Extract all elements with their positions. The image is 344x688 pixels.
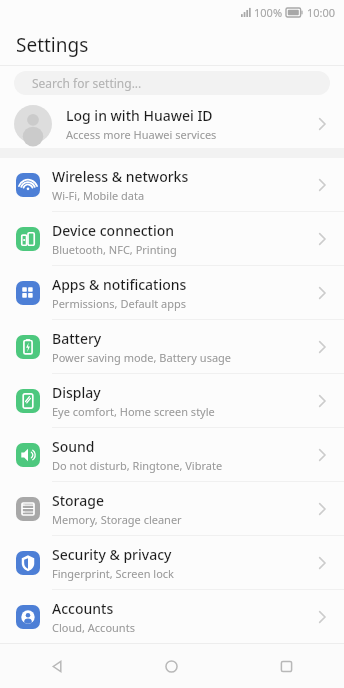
button[interactable]: Security & privacy: [0, 536, 344, 589]
button[interactable]: Apps & notifications: [0, 266, 344, 319]
button[interactable]: Search for setting...: [14, 71, 330, 95]
other: Open: [316, 178, 330, 192]
other: Open: [316, 117, 330, 131]
staticText: Cloud, Accounts: [52, 620, 135, 635]
staticText: Apps & notifications: [52, 275, 187, 294]
button[interactable]: Recent apps: [229, 644, 344, 688]
staticText: Wireless & networks: [52, 167, 189, 186]
staticText: 10:00: [307, 5, 336, 20]
staticText: Permissions, Default apps: [52, 296, 187, 311]
button[interactable]: Battery: [0, 320, 344, 373]
button[interactable]: Sound: [0, 428, 344, 481]
staticText: Power saving mode, Battery usage: [52, 350, 232, 365]
staticText: Device connection: [52, 221, 175, 240]
other: Open: [316, 394, 330, 408]
staticText: Fingerprint, Screen lock: [52, 566, 174, 581]
staticText: 100%: [254, 5, 283, 20]
staticText: Accounts: [52, 599, 114, 618]
staticText: Security & privacy: [52, 545, 172, 564]
staticText: Log in with Huawei ID: [66, 106, 213, 125]
other: Open: [316, 448, 330, 462]
staticText: Bluetooth, NFC, Printing: [52, 242, 177, 257]
button[interactable]: Device connection: [0, 212, 344, 265]
button[interactable]: Display: [0, 374, 344, 427]
staticText: Memory, Storage cleaner: [52, 512, 182, 527]
staticText: Display: [52, 383, 101, 402]
staticText: Sound: [52, 437, 95, 456]
staticText: Eye comfort, Home screen style: [52, 404, 215, 419]
button[interactable]: Accounts: [0, 590, 344, 643]
other: Open: [316, 232, 330, 246]
button[interactable]: Home: [114, 644, 229, 688]
staticText: Storage: [52, 491, 104, 510]
other: Open: [316, 286, 330, 300]
other: Open: [316, 556, 330, 570]
other: Open: [316, 340, 330, 354]
button[interactable]: Wireless & networks: [0, 158, 344, 211]
staticText: Search for setting...: [32, 75, 142, 91]
other: Open: [316, 610, 330, 624]
staticText: Wi-Fi, Mobile data: [52, 188, 145, 203]
button[interactable]: Storage: [0, 482, 344, 535]
other: Open: [316, 502, 330, 516]
staticText: Battery: [52, 329, 102, 348]
button[interactable]: Log in with Huawei ID: [0, 100, 344, 148]
button[interactable]: Back: [0, 644, 114, 688]
staticText: Access more Huawei services: [66, 127, 217, 142]
staticText: Do not disturb, Ringtone, Vibrate: [52, 458, 223, 473]
staticText: Settings: [16, 32, 89, 58]
